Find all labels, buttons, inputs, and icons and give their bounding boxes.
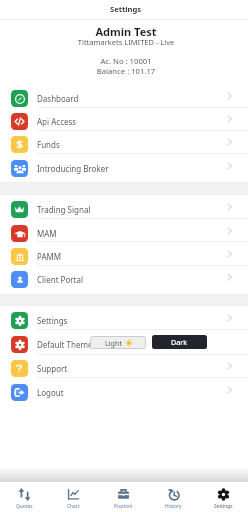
button[interactable]: Position bbox=[98, 482, 148, 510]
button[interactable]: Introducing Broker bbox=[0, 154, 248, 178]
staticText: Trading Signal bbox=[37, 204, 91, 215]
staticText: Funds bbox=[37, 139, 60, 150]
staticText: Balance : 101.17 bbox=[2, 66, 248, 76]
staticText: Logout bbox=[37, 387, 64, 398]
staticText: Tittamarkets LIMITED - Live bbox=[2, 37, 248, 47]
staticText: Chart bbox=[67, 503, 80, 510]
staticText: Dashboard bbox=[37, 93, 79, 104]
button[interactable]: Dark bbox=[152, 335, 207, 349]
staticText: Support bbox=[37, 363, 68, 374]
button[interactable]: Trading Signal bbox=[0, 195, 248, 218]
staticText: History bbox=[165, 503, 182, 510]
button[interactable]: Client Portal bbox=[0, 265, 248, 289]
button[interactable]: Dashboard bbox=[0, 84, 248, 107]
button[interactable]: Api Access bbox=[0, 107, 248, 130]
button[interactable]: Settings bbox=[198, 482, 248, 510]
staticText: Ac. No : 10001 bbox=[2, 56, 248, 66]
staticText: Admin Test bbox=[2, 24, 248, 39]
button[interactable]: Default Theme bbox=[0, 330, 248, 355]
button[interactable]: Light bbox=[90, 336, 146, 349]
staticText: Settings bbox=[37, 315, 68, 326]
button[interactable]: Support bbox=[0, 354, 248, 377]
button[interactable]: Chart bbox=[49, 482, 98, 510]
staticText: Light bbox=[105, 338, 123, 348]
button[interactable]: MAM bbox=[0, 219, 248, 242]
staticText: Client Portal bbox=[37, 274, 84, 285]
staticText: Settings bbox=[214, 503, 233, 510]
staticText: Position bbox=[114, 503, 133, 510]
staticText: Dark bbox=[171, 337, 188, 347]
button[interactable]: Settings bbox=[0, 306, 248, 329]
staticText: Introducing Broker bbox=[37, 163, 109, 174]
staticText: MAM bbox=[37, 228, 57, 239]
button[interactable]: Logout bbox=[0, 378, 248, 402]
staticText: PAMM bbox=[37, 251, 62, 262]
button[interactable]: History bbox=[148, 482, 198, 510]
button[interactable]: Funds bbox=[0, 130, 248, 153]
staticText: Quotes bbox=[16, 503, 33, 510]
staticText: Default Theme bbox=[37, 339, 93, 350]
button[interactable]: PAMM bbox=[0, 242, 248, 265]
staticText: Api Access bbox=[37, 116, 77, 127]
staticText: Settings bbox=[110, 4, 142, 14]
button[interactable]: Quotes bbox=[0, 482, 49, 510]
